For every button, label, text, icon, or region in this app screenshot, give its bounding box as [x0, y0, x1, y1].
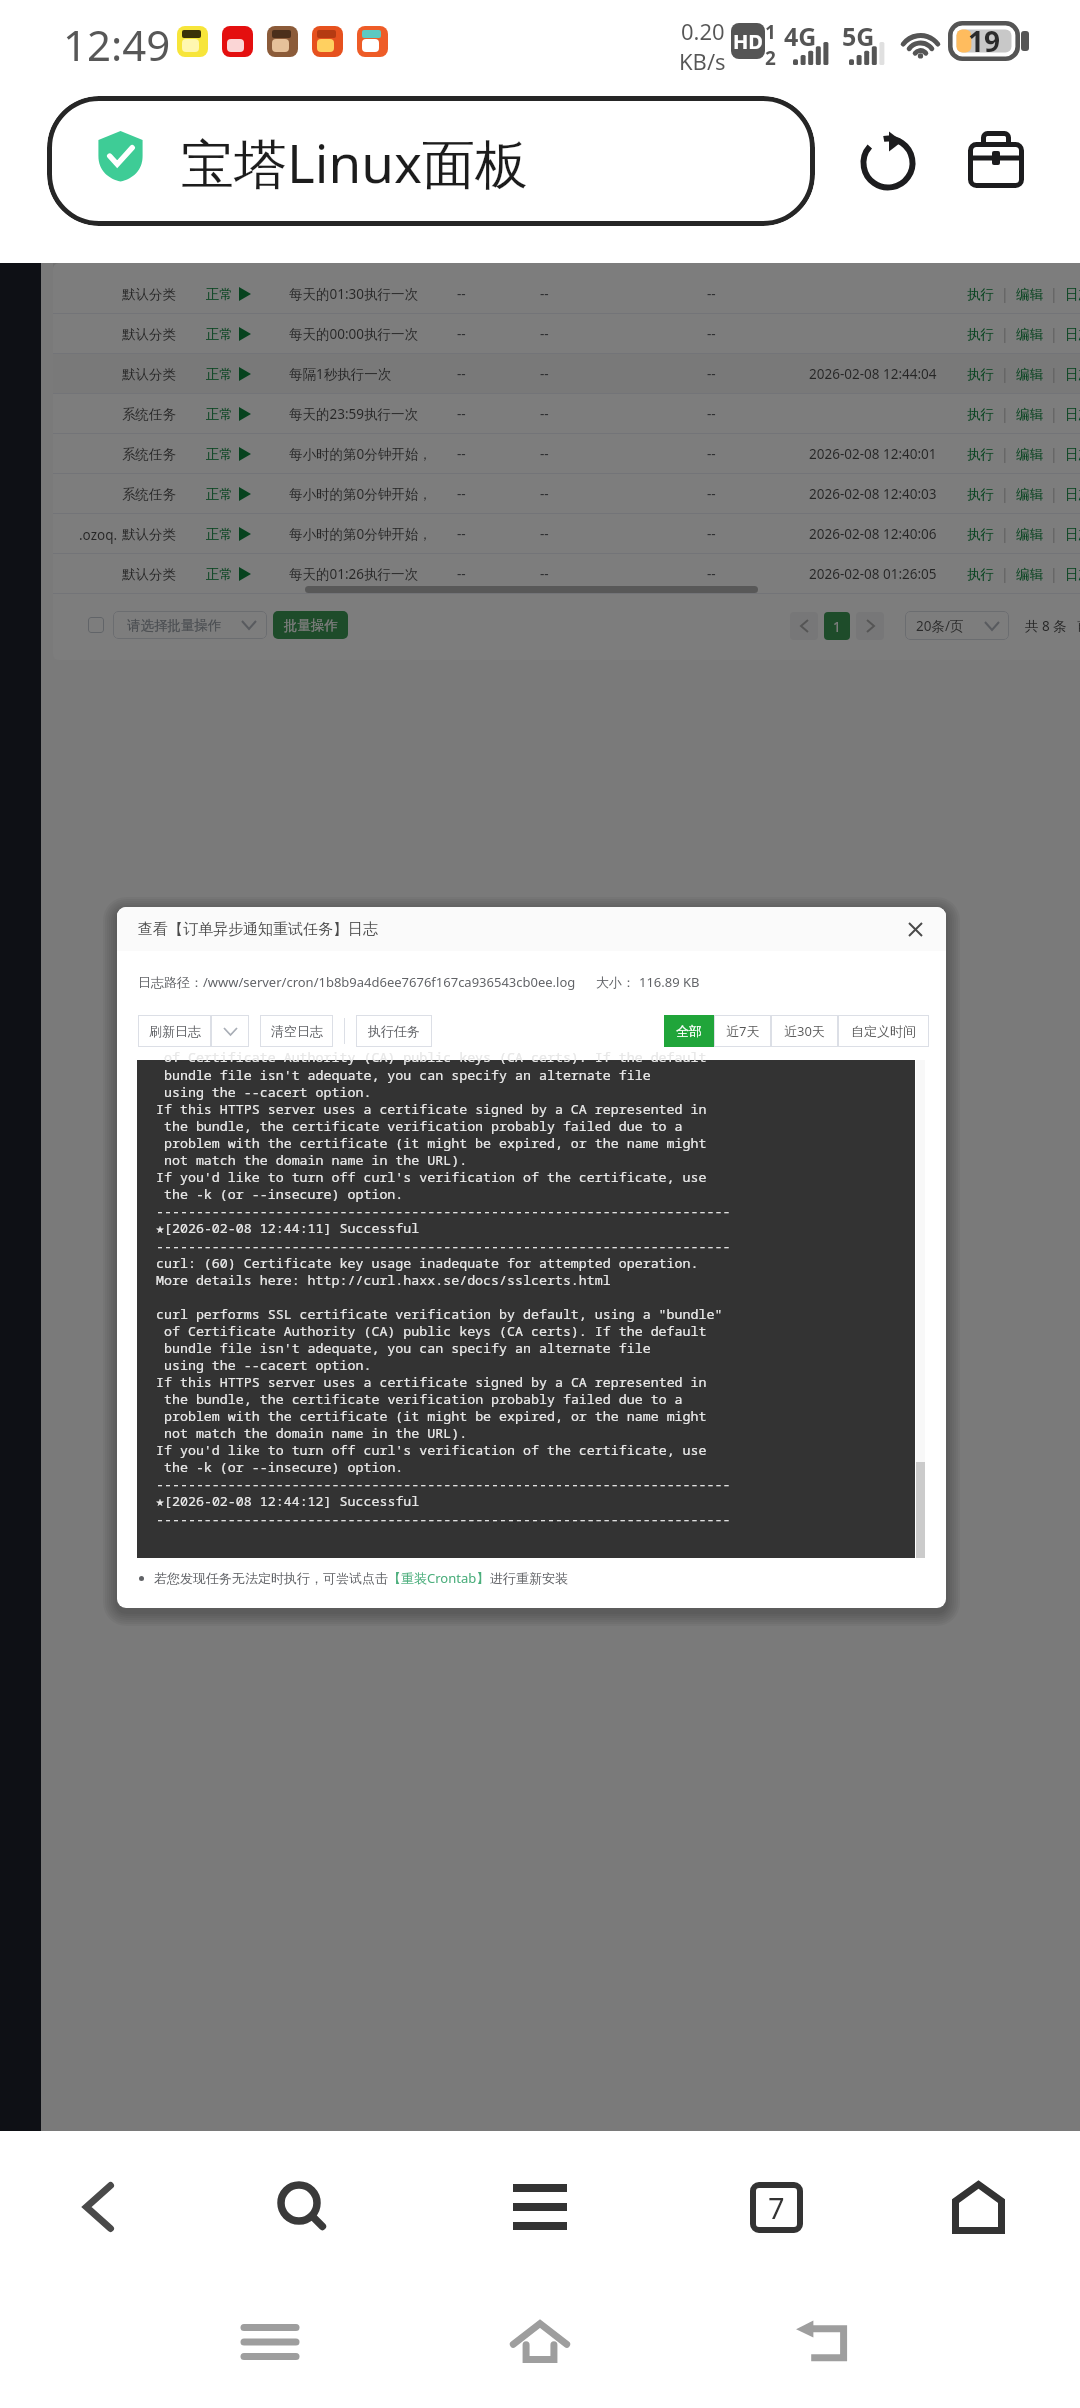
- button[interactable]: Previous page: [790, 612, 818, 640]
- button[interactable]: Toolbox: [948, 113, 1044, 209]
- staticText: 编辑: [1016, 286, 1043, 303]
- staticText: --: [707, 325, 716, 343]
- staticText: --: [540, 285, 549, 303]
- staticText: 日志: [1065, 406, 1080, 423]
- staticText: 每小时的第0分钟开始，每|: [289, 445, 436, 463]
- staticText: 执行: [967, 326, 994, 343]
- staticText: 查看【订单异步通知重试任务】日志: [138, 920, 378, 939]
- staticText: 自定义时间: [851, 1023, 916, 1039]
- staticText: 正常: [206, 286, 233, 303]
- staticText: 日志: [1065, 526, 1080, 543]
- staticText: 执行: [967, 566, 994, 583]
- staticText: 近7天: [726, 1022, 760, 1040]
- staticText: 4G: [784, 19, 817, 53]
- button[interactable]: Back: [38, 2163, 158, 2251]
- staticText: |: [1043, 285, 1065, 303]
- staticText: --: [707, 565, 716, 583]
- button[interactable]: Home: [918, 2163, 1038, 2251]
- staticText: |: [1043, 445, 1065, 463]
- button[interactable]: 刷新日志: [138, 1015, 211, 1047]
- staticText: --: [540, 405, 549, 423]
- staticText: 全部: [676, 1023, 702, 1039]
- staticText: 系统任务: [122, 406, 176, 423]
- button[interactable]: Search: [242, 2163, 362, 2251]
- staticText: 系统任务: [122, 486, 176, 503]
- button[interactable]: 执行任务: [356, 1015, 432, 1047]
- button[interactable]: 全部: [664, 1015, 714, 1047]
- staticText: 正常: [206, 526, 233, 543]
- button[interactable]: 近7天: [714, 1015, 771, 1047]
- button[interactable]: Back: [762, 2298, 882, 2386]
- staticText: of Certificate Authority (CA) public key…: [156, 1048, 731, 1528]
- staticText: 正常: [206, 446, 233, 463]
- staticText: --: [707, 405, 716, 423]
- staticText: 刷新日志: [149, 1023, 201, 1039]
- staticText: .ozoq.: [79, 526, 118, 544]
- staticText: --: [540, 525, 549, 543]
- staticText: 19: [968, 22, 1001, 60]
- staticText: --: [540, 365, 549, 383]
- staticText: 7: [768, 2188, 785, 2227]
- staticText: |: [994, 325, 1016, 343]
- button[interactable]: Home: [480, 2298, 600, 2386]
- staticText: --: [707, 445, 716, 463]
- staticText: 日志: [1065, 286, 1080, 303]
- staticText: |: [1043, 485, 1065, 503]
- staticText: --: [707, 285, 716, 303]
- staticText: --: [540, 445, 549, 463]
- staticText: 日志: [1065, 566, 1080, 583]
- button[interactable]: 自定义时间: [838, 1015, 929, 1047]
- staticText: 1: [833, 617, 842, 636]
- staticText: |: [1043, 565, 1065, 583]
- staticText: 默认分类: [122, 326, 176, 343]
- button[interactable]: Menu: [480, 2163, 600, 2251]
- staticText: 每天的00:00执行一次: [289, 325, 436, 343]
- staticText: 2026-02-08 12:40:03: [809, 485, 937, 503]
- staticText: 系统任务: [122, 446, 176, 463]
- staticText: 2: [765, 45, 776, 71]
- staticText: 批量操作: [284, 617, 338, 634]
- staticText: 日志: [1065, 326, 1080, 343]
- staticText: 编辑: [1016, 406, 1043, 423]
- staticText: --: [707, 525, 716, 543]
- button[interactable]: Recent apps: [210, 2298, 330, 2386]
- staticText: 若您发现任务无法定时执行，可尝试点击: [154, 1570, 388, 1586]
- staticText: 每天的23:59执行一次: [289, 405, 436, 423]
- button[interactable]: 宝塔Linux面板: [47, 96, 815, 226]
- staticText: 编辑: [1016, 526, 1043, 543]
- staticText: 编辑: [1016, 566, 1043, 583]
- button[interactable]: Tabs: [716, 2163, 836, 2251]
- staticText: 前: [1077, 617, 1080, 634]
- button[interactable]: 清空日志: [260, 1015, 333, 1047]
- staticText: |: [994, 285, 1016, 303]
- staticText: |: [994, 445, 1016, 463]
- staticText: |: [994, 565, 1016, 583]
- staticText: /www/server/cron/1b8b9a4d6ee7676f167ca93…: [203, 973, 576, 991]
- staticText: 执行: [967, 366, 994, 383]
- staticText: --: [457, 525, 466, 543]
- button[interactable]: Close: [899, 913, 931, 945]
- staticText: 共 8 条: [1025, 617, 1067, 635]
- staticText: 编辑: [1016, 326, 1043, 343]
- button[interactable]: Refresh: [840, 113, 936, 209]
- button[interactable]: Next page: [856, 612, 884, 640]
- button[interactable]: More options: [211, 1015, 249, 1047]
- staticText: 正常: [206, 406, 233, 423]
- staticText: 每小时的第0分钟开始，每|: [289, 485, 436, 503]
- staticText: 日志: [1065, 446, 1080, 463]
- staticText: 近30天: [784, 1022, 825, 1040]
- staticText: 执行任务: [368, 1023, 420, 1039]
- staticText: 默认分类: [122, 366, 176, 383]
- staticText: |: [994, 405, 1016, 423]
- button[interactable]: 批量操作: [273, 611, 348, 639]
- staticText: |: [1043, 525, 1065, 543]
- staticText: 日志: [1065, 486, 1080, 503]
- staticText: 每小时的第0分钟开始，每|: [289, 525, 436, 543]
- staticText: --: [457, 285, 466, 303]
- staticText: 正常: [206, 566, 233, 583]
- button[interactable]: 1: [824, 612, 850, 640]
- staticText: 进行重新安装: [490, 1570, 568, 1586]
- button[interactable]: 近30天: [771, 1015, 838, 1047]
- staticText: 1: [765, 19, 776, 45]
- staticText: 每隔1秒执行一次: [289, 365, 436, 383]
